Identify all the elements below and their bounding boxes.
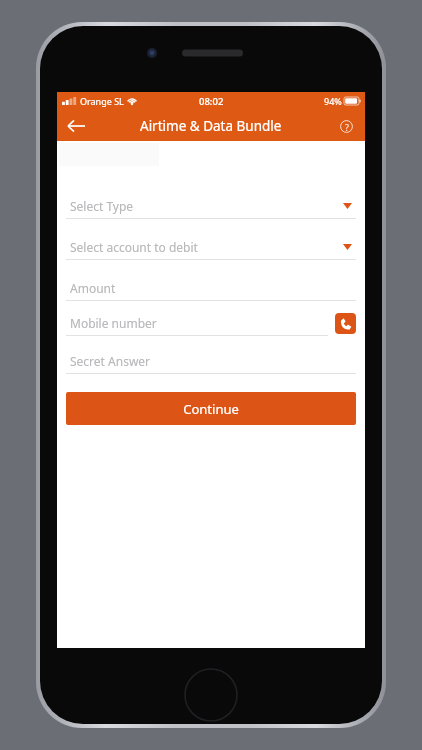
staticText: Continue: [183, 400, 239, 418]
button[interactable]: Help: [333, 113, 359, 139]
staticText: Orange SL: [80, 95, 124, 107]
staticText: ?: [345, 121, 349, 133]
staticText: Select Type: [70, 198, 134, 214]
staticText: 94%: [324, 95, 342, 107]
staticText: Airtime & Data Bundle: [140, 117, 282, 135]
button[interactable]: Select account to debit: [66, 234, 356, 260]
staticText: Select account to debit: [70, 239, 198, 255]
staticText: Secret Answer: [70, 353, 151, 369]
staticText: Amount: [70, 280, 116, 296]
button[interactable]: Select Type: [66, 193, 356, 219]
button[interactable]: Pick contact: [335, 313, 356, 334]
button[interactable]: Amount: [66, 275, 356, 301]
staticText: 08:02: [199, 95, 224, 108]
staticText: Mobile number: [70, 315, 157, 331]
button[interactable]: Continue: [66, 392, 356, 425]
button[interactable]: Back: [59, 110, 93, 141]
button[interactable]: Secret Answer: [66, 348, 356, 374]
button[interactable]: Mobile number: [66, 310, 356, 336]
